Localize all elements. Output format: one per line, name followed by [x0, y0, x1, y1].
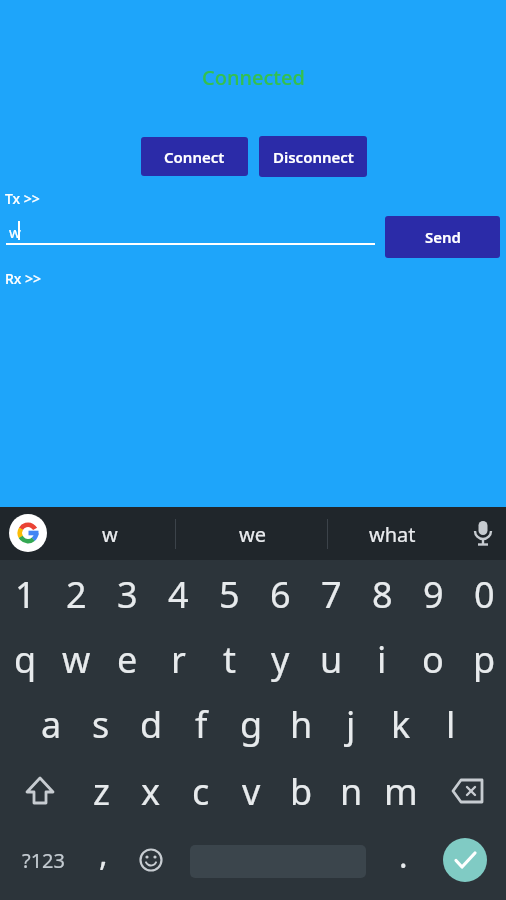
button[interactable]: 9 [408, 562, 458, 626]
button[interactable]: a [26, 692, 76, 756]
button[interactable]: j [326, 692, 376, 756]
staticText: c [192, 767, 210, 816]
staticText: k [391, 700, 411, 749]
staticText: l [446, 700, 456, 749]
button[interactable]: 6 [255, 562, 305, 626]
staticText: d [140, 700, 163, 749]
staticText: n [340, 767, 363, 816]
staticText: 7 [321, 570, 342, 619]
button[interactable]: Connect [141, 137, 248, 176]
button[interactable]: 1 [0, 562, 50, 626]
button[interactable]: t [204, 627, 254, 691]
button[interactable]: Rx >> [5, 269, 42, 288]
button[interactable]: 0 [459, 562, 506, 626]
staticText: r [171, 635, 186, 684]
staticText: p [473, 635, 496, 684]
button[interactable]: h [276, 692, 326, 756]
button[interactable]: i [357, 627, 407, 691]
button[interactable]: f [176, 692, 226, 756]
staticText: m [384, 767, 418, 816]
button[interactable]: r [153, 627, 203, 691]
button[interactable]: u [306, 627, 356, 691]
staticText: j [346, 700, 356, 749]
button[interactable]: we [202, 509, 302, 559]
button[interactable]: g [226, 692, 276, 756]
button[interactable]: p [459, 627, 506, 691]
staticText: we [239, 521, 266, 548]
staticText: x [141, 767, 161, 816]
button[interactable]: w [51, 627, 101, 691]
button[interactable]: 7 [306, 562, 356, 626]
button[interactable] [443, 838, 487, 882]
button[interactable]: n [326, 758, 376, 824]
staticText: f [195, 700, 208, 749]
button[interactable]: . [380, 829, 426, 891]
button[interactable]: z [76, 758, 126, 824]
staticText: w [102, 521, 118, 548]
button[interactable]: w [60, 509, 160, 559]
button[interactable]: 8 [357, 562, 407, 626]
staticText: g [240, 700, 263, 749]
staticText: 2 [66, 570, 87, 619]
button[interactable]: l [426, 692, 476, 756]
staticText: 8 [372, 570, 393, 619]
button[interactable]: 3 [102, 562, 152, 626]
button[interactable]: b [276, 758, 326, 824]
button[interactable]: Tx >> [5, 189, 40, 208]
staticText: s [92, 700, 110, 749]
button[interactable]: Disconnect [259, 136, 367, 177]
button[interactable]: x [126, 758, 176, 824]
staticText: Rx >> [5, 269, 42, 288]
button[interactable]: o [408, 627, 458, 691]
staticText: w [62, 635, 91, 684]
button[interactable]: e [102, 627, 152, 691]
staticText: 6 [270, 570, 291, 619]
staticText: y [271, 635, 290, 684]
button[interactable]: what [342, 509, 442, 559]
staticText: z [93, 767, 110, 816]
staticText: 0 [474, 570, 495, 619]
staticText: what [369, 521, 416, 548]
button[interactable]: v [226, 758, 276, 824]
button[interactable]: s [76, 692, 126, 756]
staticText: u [320, 635, 343, 684]
staticText: b [290, 767, 313, 816]
staticText: , [99, 832, 108, 876]
button[interactable]: 4 [153, 562, 203, 626]
button[interactable] [130, 839, 172, 881]
staticText: t [223, 635, 236, 684]
staticText: 9 [423, 570, 444, 619]
staticText: 3 [117, 570, 138, 619]
staticText: h [290, 700, 313, 749]
button[interactable]: , [80, 829, 126, 891]
staticText: Disconnect [273, 147, 354, 167]
button[interactable]: ?123 [8, 829, 78, 891]
staticText: Tx >> [5, 189, 40, 208]
staticText: v [242, 767, 261, 816]
staticText: 4 [168, 570, 189, 619]
staticText: q [14, 635, 37, 684]
button[interactable]: k [376, 692, 426, 756]
button[interactable]: q [0, 627, 50, 691]
button[interactable]: 5 [204, 562, 254, 626]
button[interactable]: c [176, 758, 226, 824]
staticText: a [41, 700, 62, 749]
button[interactable]: m [376, 758, 426, 824]
button[interactable] [441, 758, 493, 824]
button[interactable]: d [126, 692, 176, 756]
button[interactable]: Send [385, 216, 500, 258]
staticText: w [9, 222, 21, 242]
staticText: Send [425, 227, 461, 247]
staticText: Connect [164, 147, 225, 167]
button[interactable] [470, 519, 496, 547]
button[interactable]: y [255, 627, 305, 691]
button[interactable] [9, 514, 47, 552]
staticText: ?123 [22, 847, 65, 874]
staticText: . [399, 834, 408, 878]
staticText: Connected [202, 64, 305, 91]
button[interactable] [14, 758, 66, 824]
staticText: 1 [15, 570, 36, 619]
button[interactable]: 2 [51, 562, 101, 626]
